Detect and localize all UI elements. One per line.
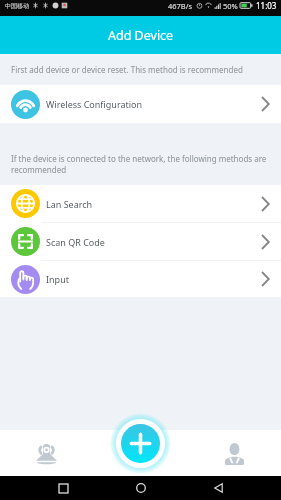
staticText: 11:03 (256, 0, 277, 11)
staticText: 467B/s (168, 1, 193, 11)
staticText: 50% (223, 1, 238, 11)
button[interactable]: Devices (0, 430, 93, 476)
staticText: Wireless Configuration (46, 98, 143, 110)
button[interactable]: Recents (48, 476, 78, 500)
button[interactable]: Back (203, 476, 233, 500)
button[interactable]: Home (126, 476, 156, 500)
staticText: Add Device (108, 27, 174, 44)
button[interactable]: Input (0, 261, 281, 297)
staticText: Input (46, 273, 69, 285)
button[interactable]: Profile (187, 430, 281, 476)
button[interactable]: Scan QR Code (0, 223, 281, 260)
button[interactable]: Lan Search (0, 185, 281, 222)
staticText: 中国移动 (5, 2, 29, 10)
staticText: First add device or device reset. This m… (11, 64, 243, 75)
button[interactable]: Wireless Configuration (0, 85, 281, 123)
staticText: Scan QR Code (46, 236, 105, 248)
staticText: Lan Search (46, 198, 93, 210)
staticText: If the device is connected to the networ… (11, 153, 274, 175)
button[interactable]: Add device (110, 413, 171, 474)
